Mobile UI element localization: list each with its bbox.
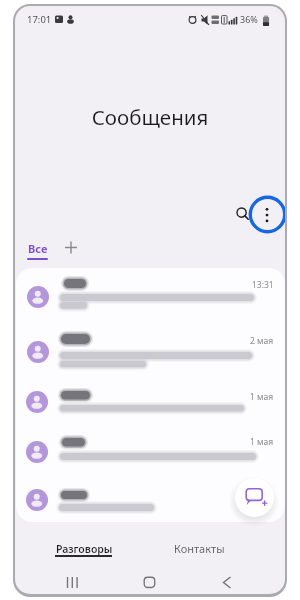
button[interactable] xyxy=(53,568,83,594)
button[interactable] xyxy=(16,426,285,476)
button[interactable] xyxy=(248,195,285,234)
button[interactable]: Все xyxy=(21,237,55,263)
staticText: Сообщения xyxy=(15,103,285,131)
button[interactable] xyxy=(16,380,285,426)
staticText: 1 мая xyxy=(250,436,274,448)
staticText: 13:31 xyxy=(252,279,274,291)
staticText: Все xyxy=(28,241,48,256)
staticText: 17:01 xyxy=(27,13,52,26)
button[interactable] xyxy=(134,568,164,594)
button[interactable] xyxy=(16,268,285,324)
button[interactable] xyxy=(16,324,285,380)
button[interactable]: Разговоры xyxy=(34,535,134,562)
staticText: Контакты xyxy=(174,541,225,556)
staticText: Разговоры xyxy=(56,542,113,556)
button[interactable] xyxy=(208,568,238,594)
staticText: 1 мая xyxy=(250,391,274,403)
button[interactable]: Контакты xyxy=(149,535,249,562)
button[interactable] xyxy=(235,478,274,517)
button[interactable] xyxy=(234,206,254,226)
staticText: 36% xyxy=(240,13,258,25)
button[interactable] xyxy=(16,476,285,522)
button[interactable] xyxy=(59,237,85,261)
staticText: 2 мая xyxy=(250,335,274,347)
